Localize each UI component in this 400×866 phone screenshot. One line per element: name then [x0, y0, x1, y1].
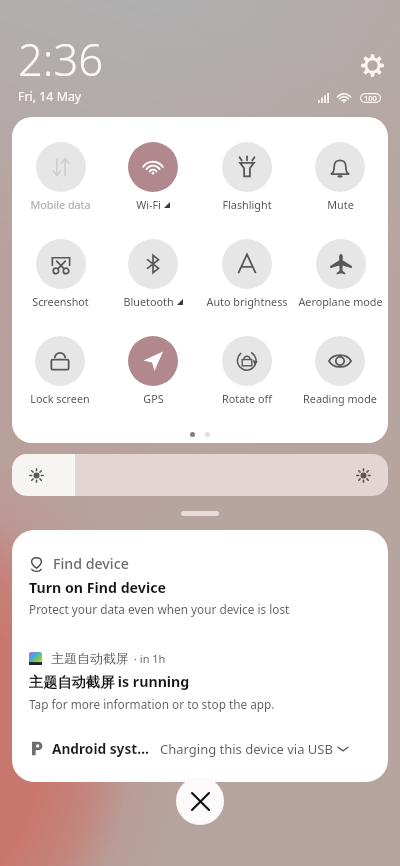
button[interactable]: Flashlight	[202, 142, 292, 212]
button[interactable]: Screenshot	[15, 239, 105, 309]
button[interactable]: Lock screen	[15, 336, 105, 406]
staticText: Screenshot	[32, 294, 89, 309]
staticText: Turn on Find device	[29, 578, 166, 597]
staticText: Flashlight	[222, 197, 272, 212]
button[interactable]: Close	[176, 777, 224, 825]
staticText: Fri, 14 May	[18, 88, 82, 105]
staticText: GPS	[143, 391, 164, 406]
staticText: Bluetooth	[123, 294, 174, 309]
staticText: Charging this device via USB	[160, 740, 333, 758]
staticText: 主题自动截屏	[51, 650, 129, 666]
staticText: 主题自动截屏 is running	[29, 672, 190, 691]
staticText: · in 1h	[134, 651, 166, 666]
staticText: Lock screen	[30, 391, 90, 406]
staticText: Wi-Fi	[136, 197, 161, 212]
staticText: Auto brightness	[206, 294, 288, 309]
staticText: Mobile data	[30, 197, 91, 212]
staticText: Mute	[327, 197, 354, 212]
button[interactable]: Aeroplane mode	[295, 239, 385, 309]
staticText: Aeroplane mode	[298, 294, 383, 309]
button[interactable]: Mobile data	[15, 142, 105, 212]
button[interactable]: Settings	[354, 47, 390, 83]
button[interactable]: Brightness	[12, 454, 388, 496]
staticText: Android syst…	[52, 739, 149, 758]
staticText: Protect your data even when your device …	[29, 601, 290, 617]
staticText: Rotate off	[222, 391, 272, 406]
button[interactable]: Rotate off	[202, 336, 292, 406]
button[interactable]: GPS	[108, 336, 198, 406]
staticText: Tap for more information or to stop the …	[29, 696, 275, 712]
staticText: Reading mode	[303, 391, 377, 406]
button[interactable]: Reading mode	[295, 336, 385, 406]
button[interactable]: Mute	[295, 142, 385, 212]
button[interactable]: Wi-Fi	[108, 142, 198, 212]
staticText: 2:36	[18, 29, 104, 88]
staticText: 100	[364, 93, 377, 103]
button[interactable]: Bluetooth	[108, 239, 198, 309]
button[interactable]: Auto brightness	[202, 239, 292, 309]
staticText: Find device	[53, 554, 129, 573]
